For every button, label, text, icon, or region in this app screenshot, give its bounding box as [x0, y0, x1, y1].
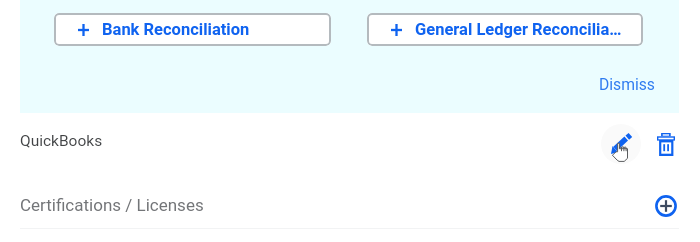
button[interactable]: Dismiss: [587, 63, 667, 105]
button[interactable]: QuickBooks: [0, 113, 700, 168]
staticText: Dismiss: [599, 75, 655, 93]
button[interactable]: Edit: [601, 124, 641, 164]
staticText: Certifications / Licenses: [20, 195, 204, 215]
button[interactable]: Add certification or license: [650, 190, 682, 222]
staticText: General Ledger Reconcilia…: [415, 20, 622, 39]
staticText: Bank Reconciliation: [102, 20, 250, 39]
button[interactable]: Bank Reconciliation: [54, 13, 331, 46]
button[interactable]: Delete: [646, 124, 686, 164]
staticText: QuickBooks: [20, 132, 103, 150]
button[interactable]: General Ledger Reconcilia…: [367, 13, 643, 46]
